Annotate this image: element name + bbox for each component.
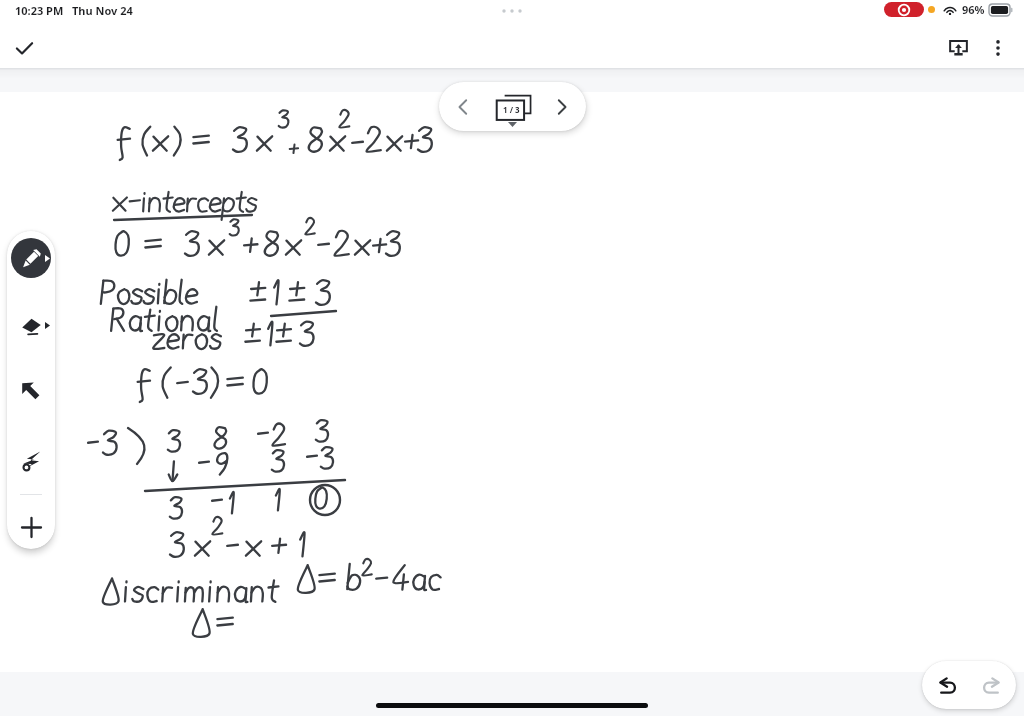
button[interactable]: Next page — [542, 87, 582, 127]
staticText: 96% — [962, 2, 985, 17]
button[interactable]: Pen — [11, 238, 51, 278]
button[interactable]: Previous page — [443, 87, 483, 127]
staticText: 10:23 PM — [15, 3, 64, 18]
button[interactable]: Laser pointer — [11, 439, 51, 479]
button[interactable]: Add tool — [11, 507, 51, 547]
button[interactable]: Select — [11, 372, 51, 412]
button[interactable]: Done — [7, 31, 41, 65]
button[interactable]: Redo — [971, 665, 1011, 705]
button[interactable]: Page 1 of 3 — [491, 87, 537, 127]
button[interactable]: Present to screen — [940, 30, 976, 66]
staticText: 1 / 3 — [503, 104, 520, 115]
staticText: Thu Nov 24 — [72, 3, 133, 18]
button[interactable]: Undo — [927, 665, 967, 705]
button[interactable]: Eraser — [11, 305, 51, 345]
button[interactable]: More options — [980, 30, 1016, 66]
